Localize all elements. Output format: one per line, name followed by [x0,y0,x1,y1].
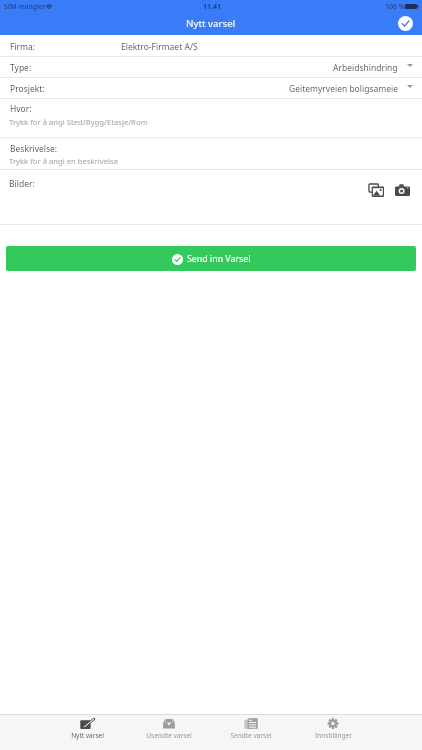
staticText: 11.41 [203,2,221,12]
staticText: Firma: [10,41,36,53]
button[interactable]: Usendte varsel [128,715,210,750]
button[interactable]: Innstillinger [292,715,374,750]
staticText: Beskrivelse: [10,143,58,155]
staticText: Usendte varsel [146,731,192,740]
button[interactable]: Prosjekt: [0,77,422,98]
staticText: Sendte varsel [230,731,272,740]
staticText: Nytt varsel [186,17,236,30]
staticText: Trykk for å angi en beskrivelse [9,156,119,166]
button[interactable]: Type: [0,56,422,77]
staticText: Type: [10,62,32,74]
staticText: Nytt varsel [71,731,104,740]
staticText: Arbeidshindring [333,62,398,74]
button[interactable]: Beskrivelse: [0,138,422,169]
button[interactable]: Velg bilde [365,179,387,201]
button[interactable]: Sendte varsel [210,715,292,750]
button[interactable]: Nytt varsel [46,715,128,750]
button[interactable]: Ta bilde [391,179,413,201]
staticText: Bilder: [9,178,35,190]
staticText: SIM mangler [4,2,46,11]
staticText: Trykk for å angi Sted/Bygg/Etasje/Rom [9,117,148,127]
staticText: Geitemyrveien boligsameie [289,83,398,95]
staticText: Send inn Varsel [187,253,251,265]
button[interactable]: Bilder: [0,169,422,224]
staticText: Hvor: [10,103,32,115]
staticText: Prosjekt: [10,83,45,95]
staticText: Elektro-Firmaet A/S [121,41,198,53]
staticText: Innstillinger [315,731,352,740]
button[interactable]: Hvor: [0,98,422,137]
button[interactable]: Send inn Varsel [6,246,416,271]
button[interactable]: Firma: [0,35,422,56]
button[interactable]: Bekreft [398,16,413,31]
staticText: 100 % [385,2,405,12]
